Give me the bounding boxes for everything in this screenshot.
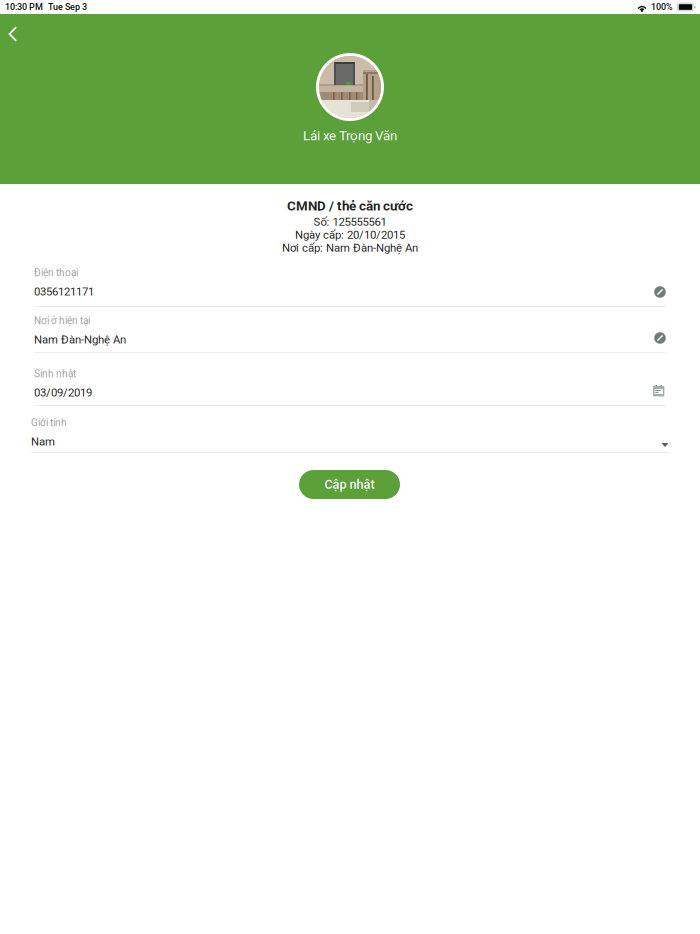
staticText: Điện thoại xyxy=(34,267,78,279)
button[interactable]: Chỉnh sửa nơi ở hiện tại xyxy=(647,325,673,351)
staticText: 10:30 PM xyxy=(5,2,43,12)
staticText: Nam xyxy=(31,435,55,448)
staticText: 100% xyxy=(651,2,673,12)
staticText: 03/09/2019 xyxy=(34,386,92,399)
button[interactable]: Giới tính xyxy=(0,417,700,464)
staticText: Tue Sep 3 xyxy=(48,2,87,12)
staticText: 0356121171 xyxy=(34,285,94,298)
staticText: Nơi cấp: Nam Đàn-Nghệ An xyxy=(282,241,418,255)
staticText: Giới tính xyxy=(31,417,67,429)
button[interactable]: Nơi ở hiện tại xyxy=(0,315,700,364)
button[interactable]: Chọn ngày sinh xyxy=(646,378,672,404)
button[interactable]: Back xyxy=(0,18,29,50)
button[interactable]: Cập nhật xyxy=(299,470,400,499)
staticText: Nam Đàn-Nghệ An xyxy=(34,333,126,346)
button[interactable]: Chỉnh sửa điện thoại xyxy=(647,279,673,305)
button[interactable]: Chọn giới tính xyxy=(654,434,676,456)
staticText: CMND / thẻ căn cước xyxy=(287,198,413,214)
staticText: Cập nhật xyxy=(324,477,374,492)
staticText: Sinh nhật xyxy=(34,368,76,380)
staticText: Nơi ở hiện tại xyxy=(34,315,90,327)
staticText: Ngày cấp: 20/10/2015 xyxy=(295,228,405,242)
button[interactable]: Điện thoại xyxy=(0,267,700,318)
staticText: Lái xe Trọng Văn xyxy=(303,128,397,144)
staticText: Số: 125555561 xyxy=(313,215,386,229)
button[interactable]: Sinh nhật xyxy=(0,368,700,417)
